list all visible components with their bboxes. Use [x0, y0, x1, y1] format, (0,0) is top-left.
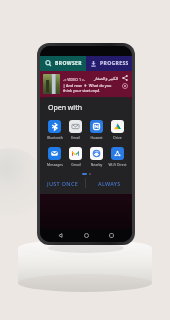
staticText: Gmail: [71, 162, 81, 167]
staticText: Email: [71, 135, 80, 140]
staticText: -= VIDEO 1 =-: [63, 77, 86, 82]
staticText: Nearby Share: [86, 162, 107, 167]
button[interactable]: Home: [81, 230, 92, 241]
button[interactable]: -= VIDEO 1 =-: [40, 71, 132, 97]
staticText: Bluetooth: [47, 135, 63, 140]
button[interactable]: Gmail: [65, 146, 86, 168]
staticText: PROGRESS: [100, 60, 129, 67]
button[interactable]: Email: [65, 119, 86, 141]
staticText: الكبير والصغار: [94, 76, 119, 82]
staticText: | And now ✈ What do you think your start…: [63, 83, 112, 93]
staticText: JUST ONCE: [47, 180, 79, 187]
staticText: Messages: [47, 162, 63, 167]
button[interactable]: BROWSER: [40, 56, 86, 71]
button[interactable]: Messages: [44, 146, 65, 168]
button[interactable]: ALWAYS: [86, 175, 132, 191]
staticText: Huawei Beam: [86, 135, 107, 140]
button[interactable]: Recent apps: [106, 230, 117, 241]
button[interactable]: Bluetooth: [44, 119, 65, 141]
staticText: ALWAYS: [98, 180, 121, 187]
button[interactable]: Wi-Fi Direct: [107, 146, 128, 168]
staticText: Wi-Fi Direct: [108, 162, 127, 167]
button[interactable]: Drive: [107, 119, 128, 141]
button[interactable]: Nearby Share: [86, 146, 107, 168]
staticText: Open with: [48, 103, 83, 113]
button[interactable]: Huawei Beam: [86, 119, 107, 141]
button[interactable]: Share: [121, 74, 129, 82]
staticText: Drive: [113, 135, 122, 140]
button[interactable]: PROGRESS: [86, 56, 132, 71]
staticText: BROWSER: [55, 60, 82, 67]
button[interactable]: Cancel download: [121, 82, 129, 90]
button[interactable]: JUST ONCE: [40, 175, 85, 191]
button[interactable]: Back: [55, 230, 66, 241]
